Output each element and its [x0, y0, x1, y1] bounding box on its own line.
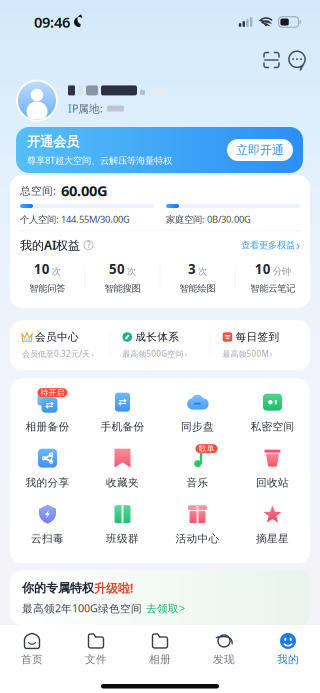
staticText: 我的 [277, 653, 299, 666]
staticText: 10 [255, 260, 271, 278]
staticText: 相册备份 [25, 420, 69, 433]
staticText: 智能搜图 [104, 283, 140, 294]
staticText: 立即开通 [236, 143, 284, 157]
staticText: 总空间: [20, 183, 56, 198]
staticText: 智能绘图 [180, 283, 216, 294]
staticText: 云扫毒 [31, 532, 64, 545]
staticText: 次 [198, 266, 207, 277]
staticText: 最高领500M [222, 348, 268, 359]
button[interactable]: 手机备份 [85, 393, 160, 432]
staticText: 最高领2年100G绿色空间 [22, 601, 142, 615]
staticText: 摘星星 [256, 532, 289, 545]
staticText: 会员低至0.32元/天 [22, 348, 90, 359]
staticText: 升级啦! [94, 580, 133, 596]
staticText: 我的AI权益 [20, 237, 80, 253]
staticText: › [296, 237, 300, 253]
staticText: 50 [109, 260, 125, 278]
button[interactable]: 你的专属特权 [0, 570, 320, 625]
staticText: 收藏夹 [106, 476, 139, 489]
staticText: 次 [52, 266, 61, 277]
staticText: 手机备份 [100, 420, 144, 433]
staticText: 每日签到 [235, 330, 279, 344]
staticText: 回收站 [256, 476, 289, 489]
button[interactable]: 50 [85, 260, 160, 294]
staticText: 会员中心 [35, 330, 79, 344]
staticText: 3 [188, 260, 196, 278]
button[interactable]: 首页 [0, 632, 64, 667]
button[interactable]: 成长体系 [110, 320, 210, 370]
button[interactable]: 回收站 [235, 449, 310, 488]
staticText: 智能问答 [29, 283, 65, 294]
staticText: 去领取> [146, 601, 185, 615]
button[interactable]: 10 [10, 260, 84, 294]
staticText: 相册 [149, 653, 171, 666]
button[interactable]: 待开启 [10, 393, 85, 432]
button[interactable]: 活动中心 [160, 505, 235, 544]
button[interactable]: 摘星星 [235, 505, 310, 544]
staticText: 10 [34, 260, 50, 278]
staticText: 开通会员 [27, 134, 79, 150]
staticText: › [91, 348, 94, 360]
staticText: 09:46 [34, 12, 70, 32]
staticText: 个人空间: 144.55M/30.00G [20, 213, 130, 225]
staticText: 文件 [85, 653, 107, 666]
button[interactable]: 班级群 [85, 505, 160, 544]
button[interactable]: 相册 [128, 632, 192, 667]
button[interactable]: 歌单 [160, 449, 235, 488]
staticText: 60.00G [61, 181, 108, 200]
button[interactable]: 收藏夹 [85, 449, 160, 488]
button[interactable]: 我的 [256, 632, 320, 667]
staticText: 我的分享 [25, 476, 69, 489]
staticText: IP属地: [68, 101, 103, 116]
staticText: 分钟 [273, 266, 291, 277]
button[interactable]: 文件 [64, 632, 128, 667]
staticText: 查看更多权益 [241, 239, 295, 251]
button[interactable]: 查看更多权益 [241, 237, 300, 253]
staticText: 尊享8T超大空间、云解压等海量特权 [27, 154, 172, 166]
button[interactable]: 发现 [192, 632, 256, 667]
button[interactable]: 10 [235, 260, 310, 294]
button[interactable]: 私密空间 [235, 393, 310, 432]
staticText: 发现 [213, 653, 235, 666]
staticText: › [269, 348, 272, 360]
staticText: 首页 [21, 653, 43, 666]
staticText: 待开启 [40, 388, 64, 397]
button[interactable]: 云扫毒 [10, 505, 85, 544]
staticText: 次 [127, 266, 136, 277]
button[interactable]: 扫一扫 [259, 47, 284, 72]
staticText: 智能云笔记 [250, 283, 295, 294]
button[interactable]: 同步盘 [160, 393, 235, 432]
button[interactable]: 开通会员 [0, 127, 320, 173]
staticText: › [184, 348, 187, 360]
staticText: 活动中心 [175, 532, 219, 545]
staticText: 成长体系 [135, 330, 179, 344]
staticText: 班级群 [106, 532, 139, 545]
staticText: 家庭空间: 0B/30.00G [166, 213, 251, 225]
button[interactable]: 3 [160, 260, 235, 294]
staticText: 你的专属特权 [22, 581, 94, 595]
button[interactable]: 客服 [284, 47, 310, 73]
button[interactable]: 我的分享 [10, 449, 85, 488]
staticText: ? [87, 240, 90, 250]
button[interactable]: 每日签到 [210, 320, 310, 370]
staticText: 同步盘 [181, 420, 214, 433]
staticText: 音乐 [186, 476, 208, 489]
staticText: 私密空间 [250, 420, 294, 433]
button[interactable]: 会员中心 [10, 320, 109, 370]
staticText: 最高领500G空间 [122, 348, 183, 359]
button[interactable]: 头像 [16, 79, 58, 121]
staticText: 歌单 [198, 444, 214, 453]
